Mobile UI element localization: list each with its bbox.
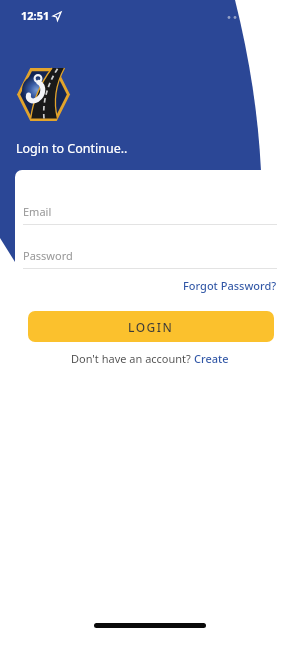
staticText: LOGIN [128,319,174,335]
staticText: Password [23,248,73,263]
staticText: Email [23,204,52,219]
staticText: Login to Continue.. [16,140,128,157]
button[interactable]: Create [194,351,229,366]
button[interactable]: Forgot Password? [183,278,277,293]
button[interactable]: LOGIN [28,311,274,342]
staticText: 12:51 [21,8,50,23]
staticText: Don't have an account? [71,351,194,366]
